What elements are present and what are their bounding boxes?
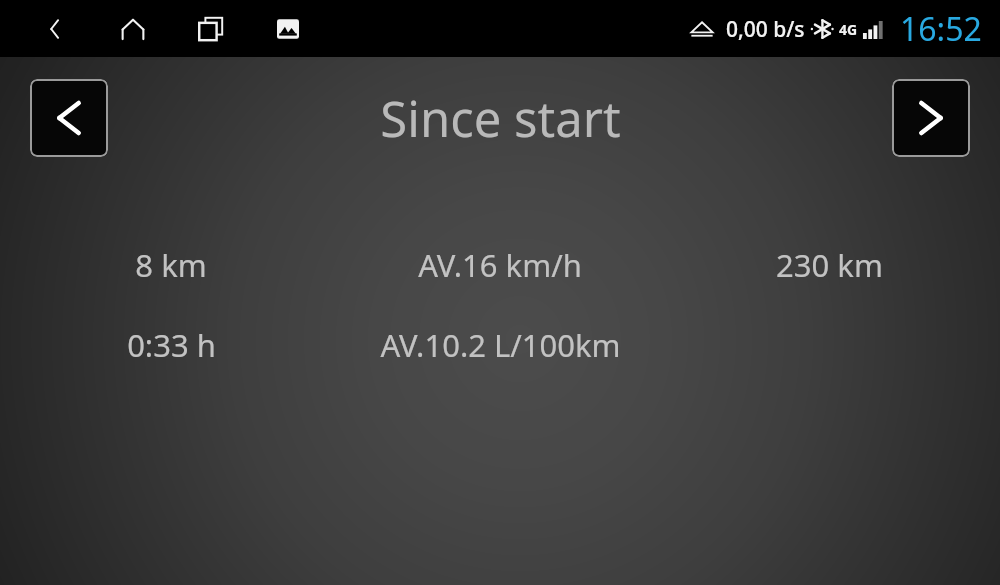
staticText: Since start [380,85,621,152]
button[interactable]: Previous [30,79,108,157]
staticText: AV.16 km/h [418,244,582,286]
button[interactable]: Recent apps [186,7,236,51]
staticText: 8 km [135,244,207,286]
staticText: AV.10.2 L/100km [380,324,621,366]
button[interactable]: Home [108,7,158,51]
staticText: 230 km [776,244,883,286]
staticText: 4G [839,20,858,39]
button[interactable]: Back [30,7,80,51]
staticText: 0:33 h [127,324,216,366]
staticText: 16:52 [900,7,982,51]
button[interactable]: Screenshot [264,7,312,51]
button[interactable]: Next [892,79,970,157]
staticText: 0,00 b/s [726,15,805,44]
